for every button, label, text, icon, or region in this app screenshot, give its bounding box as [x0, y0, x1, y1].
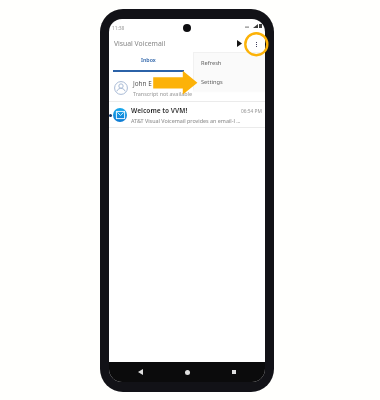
button[interactable]: Saved [187, 55, 265, 72]
button[interactable]: Home [180, 365, 194, 379]
button[interactable]: Back [133, 365, 147, 379]
button[interactable]: Inbox [109, 55, 187, 72]
staticText: Welcome to VVM! [131, 106, 188, 115]
staticText: 11:38 [112, 25, 125, 32]
staticText: Saved [219, 56, 234, 63]
staticText: 06:54 PM [241, 108, 262, 115]
button[interactable]: John E [109, 73, 265, 102]
staticText: Inbox [141, 56, 156, 63]
staticText: John E [133, 79, 152, 88]
button[interactable]: Settings [194, 72, 265, 91]
button[interactable]: Welcome to VVM! [109, 102, 265, 128]
staticText: Settings [201, 78, 223, 86]
button[interactable]: More options [244, 32, 265, 56]
button[interactable]: Refresh [194, 53, 265, 72]
staticText: AT&T Visual Voicemail provides an email-… [131, 117, 241, 124]
staticText: Transcript not available [133, 90, 192, 97]
staticText: Visual Voicemail [114, 39, 166, 48]
button[interactable]: Recent apps [227, 365, 241, 379]
staticText: Refresh [201, 59, 222, 67]
